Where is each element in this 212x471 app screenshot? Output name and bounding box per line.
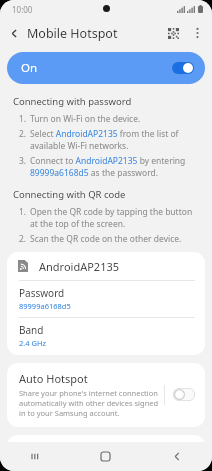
staticText: Band	[19, 323, 44, 337]
staticText: 1.	[19, 113, 30, 125]
button[interactable]: Auto Hotspot	[7, 363, 205, 427]
button[interactable]: Recents	[0, 442, 70, 471]
button[interactable]: On	[7, 52, 205, 84]
staticText: 2.	[19, 233, 30, 245]
staticText: AndroidAP2135	[39, 259, 120, 274]
staticText: Password	[19, 286, 65, 300]
staticText: On	[21, 60, 38, 76]
staticText: Connecting with password	[13, 95, 132, 108]
staticText: 2.4 GHz	[19, 338, 47, 348]
staticText: 89999a6168d5	[19, 301, 71, 311]
button[interactable]: Band	[7, 318, 205, 355]
staticText: 3.	[19, 155, 30, 167]
staticText: Mobile Hotspot	[27, 25, 118, 42]
button[interactable]: Back	[141, 442, 212, 471]
staticText: 2.	[19, 128, 30, 140]
staticText: Connect to AndroidAP2135 by entering 899…	[30, 155, 199, 179]
button[interactable]: Home	[70, 442, 141, 471]
staticText: Share your phone's internet connection a…	[19, 388, 164, 418]
button[interactable]: Auto Hotspot toggle	[173, 388, 195, 401]
staticText: Select AndroidAP2135 from the list of av…	[30, 128, 199, 152]
button[interactable]: More options	[187, 23, 207, 43]
button[interactable]: Show QR code	[162, 22, 184, 44]
button[interactable]: Password	[7, 281, 205, 317]
button[interactable]: Back	[4, 23, 24, 43]
staticText: Scan the QR code on the other device.	[30, 233, 182, 245]
staticText: Connecting with QR code	[13, 188, 126, 201]
staticText: Open the QR code by tapping the button a…	[30, 206, 199, 230]
staticText: Auto Hotspot	[19, 371, 88, 386]
button[interactable]: AndroidAP2135	[7, 252, 205, 280]
staticText: Turn on Wi-Fi on the device.	[30, 113, 141, 125]
staticText: 1.	[19, 206, 30, 218]
staticText: 10:00	[12, 4, 33, 15]
